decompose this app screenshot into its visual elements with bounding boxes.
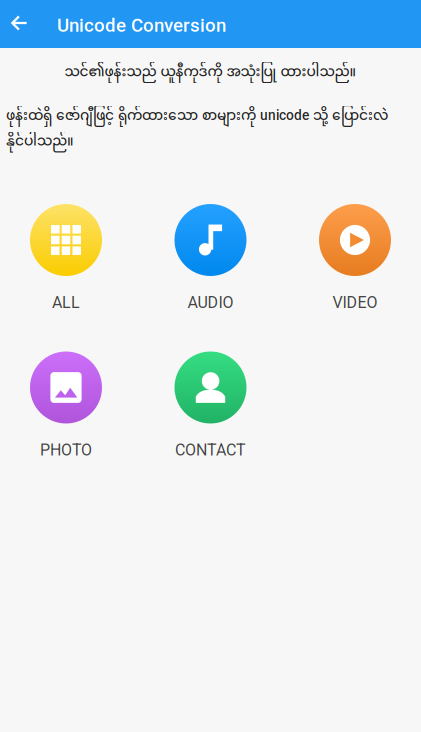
button[interactable]: AUDIO bbox=[150, 204, 270, 329]
button[interactable]: CONTACT bbox=[150, 351, 270, 476]
staticText: ALL bbox=[52, 293, 80, 312]
staticText: CONTACT bbox=[175, 441, 246, 459]
button[interactable]: PHOTO bbox=[6, 351, 126, 476]
staticText: PHOTO bbox=[40, 441, 92, 459]
staticText: AUDIO bbox=[187, 293, 233, 312]
staticText: Unicode Conversion bbox=[57, 14, 226, 36]
button[interactable]: ALL bbox=[6, 204, 126, 329]
button[interactable]: Back bbox=[0, 0, 57, 48]
staticText: သင်၏ဖုန်းသည် ယူနီကုဒ်ကို အသုံးပြု ထားပါသ… bbox=[64, 58, 356, 88]
button[interactable]: VIDEO bbox=[295, 204, 415, 329]
staticText: ဖုန်းထဲရှိ ဇော်ဂျီဖြင့် ရိုက်ထားသော စာမျ… bbox=[6, 104, 388, 155]
staticText: VIDEO bbox=[332, 293, 377, 312]
